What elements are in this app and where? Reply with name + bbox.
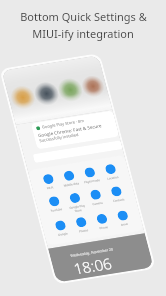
staticText: 18:06: [64, 238, 121, 294]
button[interactable]: Flight mode: [73, 158, 107, 192]
staticText: Drive: [119, 219, 130, 230]
staticText: Bottom Quick Settings &: [20, 9, 147, 24]
button[interactable]: Drive: [106, 202, 140, 235]
staticText: Google: [56, 227, 70, 241]
button[interactable]: Camera: [79, 181, 113, 215]
staticText: Successfully installed: [37, 116, 81, 159]
staticText: Google Chrome: Fast & Secure: [35, 96, 105, 165]
button[interactable]: Google Play Store · 8m: [21, 77, 129, 183]
staticText: Google Play Store · 8m: [39, 101, 87, 147]
staticText: Wi-Fi: [45, 182, 56, 193]
button[interactable]: Wi-Fi: [31, 165, 66, 199]
staticText: Wednesday, November 20: [68, 229, 115, 275]
staticText: Photos: [77, 224, 90, 238]
button[interactable]: YouTube: [37, 187, 72, 221]
button[interactable]: Photos: [64, 208, 99, 242]
staticText: Flight mode: [82, 171, 102, 191]
staticText: Contacts: [111, 192, 127, 208]
button[interactable]: Contacts: [99, 177, 134, 211]
staticText: Google Play Store: [66, 197, 89, 219]
staticText: Location: [105, 170, 121, 186]
staticText: Camera: [90, 196, 105, 211]
button[interactable]: Mobile data: [52, 162, 87, 196]
button[interactable]: Location: [94, 155, 128, 189]
staticText: YouTube: [49, 202, 64, 218]
staticText: Phone: [97, 221, 110, 234]
button[interactable]: Google Play Store: [57, 184, 94, 221]
staticText: Mobile data: [61, 175, 81, 194]
staticText: MIUI-ify integration: [32, 26, 134, 41]
button[interactable]: Google: [43, 211, 78, 245]
button[interactable]: Phone: [85, 205, 120, 239]
button[interactable]: [29, 104, 126, 199]
